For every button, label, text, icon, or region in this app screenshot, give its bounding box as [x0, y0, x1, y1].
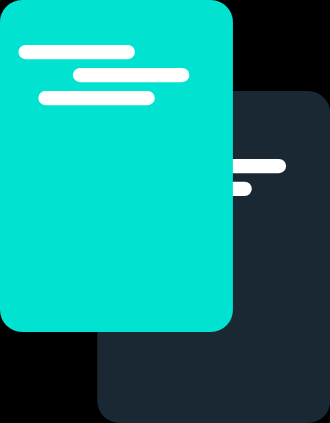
button[interactable]: Stacked documents illustration — [0, 0, 330, 423]
